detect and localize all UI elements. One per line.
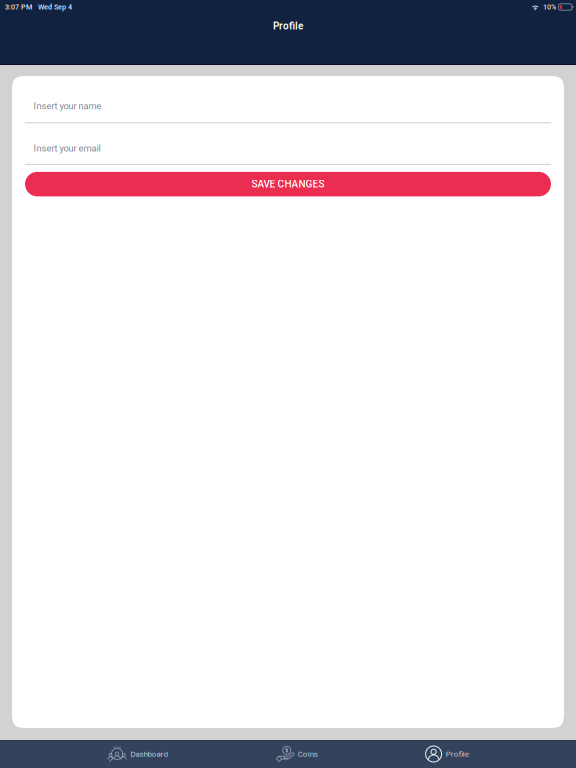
button[interactable]: SAVE CHANGES [25, 172, 551, 196]
staticText: Dashboard [130, 749, 168, 759]
staticText: Profile [446, 749, 469, 759]
staticText: SAVE CHANGES [251, 178, 324, 190]
staticText: 3:07 PM [5, 3, 32, 11]
staticText: Wed Sep 4 [38, 3, 72, 11]
staticText: 10% [543, 3, 556, 11]
button[interactable]: Coins [276, 740, 318, 768]
button[interactable]: Insert your email [25, 123, 551, 165]
staticText: Coins [298, 749, 318, 759]
staticText: Profile [273, 20, 303, 32]
staticText: Insert your email [33, 143, 100, 154]
button[interactable]: Dashboard [107, 740, 168, 768]
button[interactable]: Insert your name [25, 76, 551, 123]
staticText: Insert your name [33, 101, 101, 111]
button[interactable]: Profile [425, 740, 469, 768]
